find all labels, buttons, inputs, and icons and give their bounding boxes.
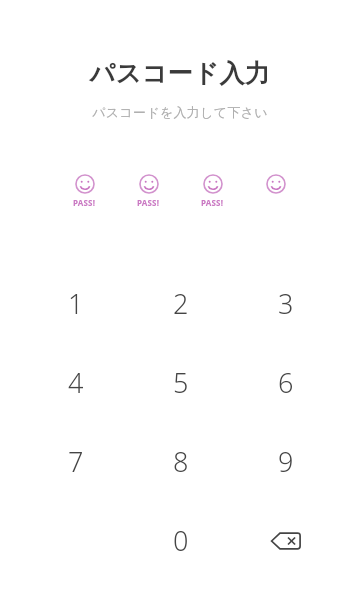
staticText: PASS! bbox=[73, 197, 96, 208]
staticText: パスコード入力 bbox=[0, 58, 360, 89]
button[interactable]: 1 bbox=[23, 264, 128, 343]
button[interactable]: Backspace bbox=[233, 501, 338, 580]
button[interactable]: 8 bbox=[128, 422, 233, 501]
staticText: 5 bbox=[173, 364, 189, 401]
button[interactable]: 2 bbox=[128, 264, 233, 343]
staticText: 1 bbox=[68, 285, 84, 322]
staticText: 4 bbox=[68, 364, 84, 401]
button[interactable]: 0 bbox=[128, 501, 233, 580]
staticText: パスコードを入力して下さい bbox=[0, 104, 360, 120]
staticText: 0 bbox=[173, 522, 189, 559]
button[interactable]: 3 bbox=[233, 264, 338, 343]
staticText: PASS! bbox=[201, 197, 224, 208]
button[interactable]: 5 bbox=[128, 343, 233, 422]
button[interactable]: 9 bbox=[233, 422, 338, 501]
staticText: 9 bbox=[278, 443, 294, 480]
staticText: 6 bbox=[278, 364, 294, 401]
button[interactable]: 6 bbox=[233, 343, 338, 422]
staticText: 7 bbox=[68, 443, 84, 480]
button[interactable]: 4 bbox=[23, 343, 128, 422]
staticText: 2 bbox=[173, 285, 189, 322]
staticText: PASS! bbox=[137, 197, 160, 208]
staticText: 8 bbox=[173, 443, 189, 480]
button[interactable]: 7 bbox=[23, 422, 128, 501]
staticText: 3 bbox=[278, 285, 294, 322]
